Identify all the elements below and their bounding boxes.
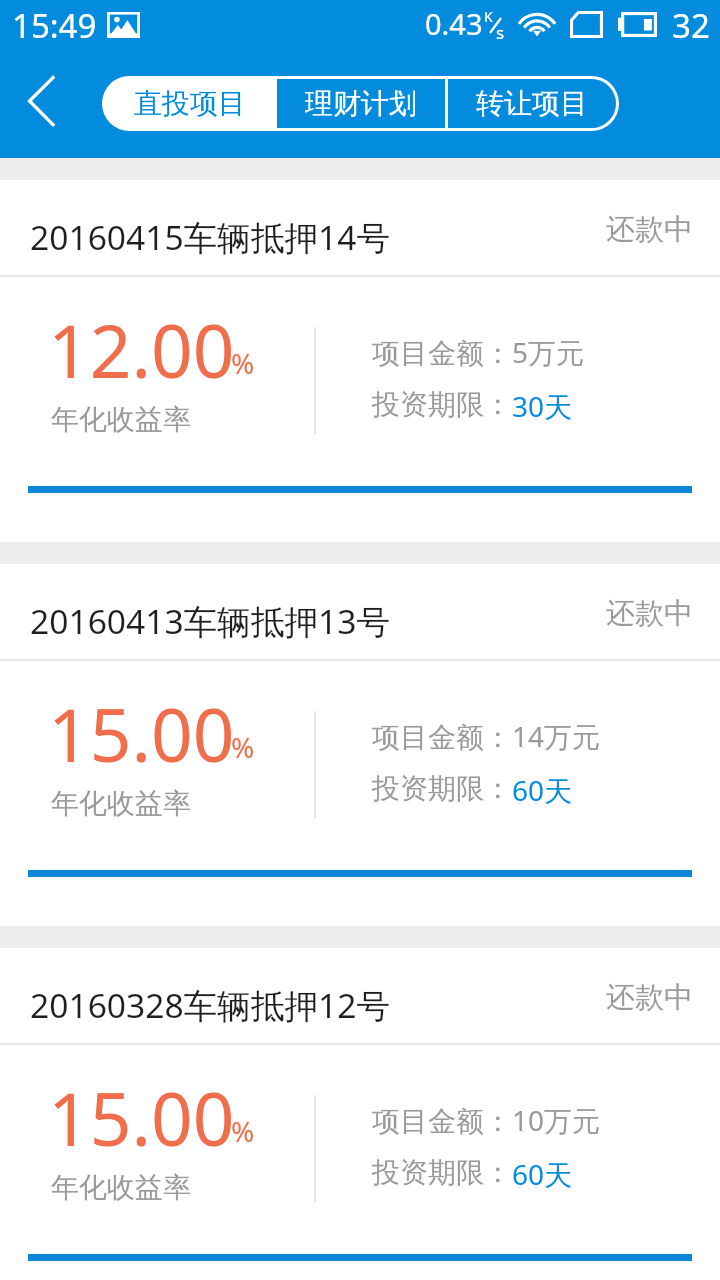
staticText: 还款中 (606, 979, 693, 1015)
staticText: K (484, 7, 493, 26)
staticText: 15.00 (48, 1068, 235, 1167)
staticText: s (496, 21, 505, 44)
button[interactable]: 直投项目 (105, 79, 274, 128)
staticText: 20160413车辆抵押13号 (30, 598, 391, 644)
staticText: 32 (672, 3, 710, 48)
staticText: 30天 (512, 387, 573, 425)
staticText: 15.00 (48, 684, 235, 783)
staticText: 投资期限： (372, 771, 512, 806)
staticText: 0.43 (425, 4, 483, 43)
button[interactable]: 理财计划 (277, 79, 445, 128)
staticText: 20160415车辆抵押14号 (30, 214, 391, 260)
staticText: 年化收益率 (51, 402, 191, 437)
button[interactable]: 20160415车辆抵押14号 (0, 180, 720, 542)
staticText: 60天 (512, 1155, 573, 1193)
staticText: 投资期限： (372, 1155, 512, 1190)
staticText: 年化收益率 (51, 786, 191, 821)
staticText: % (231, 728, 255, 766)
staticText: 12.00 (48, 300, 235, 399)
staticText: 15:49 (12, 3, 97, 48)
staticText: % (231, 1112, 255, 1150)
button[interactable]: 转让项目 (448, 79, 616, 128)
button[interactable]: 20160413车辆抵押13号 (0, 564, 720, 926)
staticText: 理财计划 (305, 86, 417, 121)
staticText: 60天 (512, 771, 573, 809)
staticText: 还款中 (606, 211, 693, 247)
button[interactable]: 20160328车辆抵押12号 (0, 948, 720, 1280)
staticText: 直投项目 (134, 86, 246, 121)
staticText: 年化收益率 (51, 1170, 191, 1205)
staticText: % (231, 344, 255, 382)
staticText: 转让项目 (476, 86, 588, 121)
staticText: 项目金额：14万元 (372, 717, 601, 755)
staticText: 20160328车辆抵押12号 (30, 982, 391, 1028)
staticText: 项目金额：5万元 (372, 333, 585, 371)
button[interactable]: Back (6, 62, 80, 150)
staticText: 还款中 (606, 595, 693, 631)
staticText: 项目金额：10万元 (372, 1101, 601, 1139)
staticText: 投资期限： (372, 387, 512, 422)
